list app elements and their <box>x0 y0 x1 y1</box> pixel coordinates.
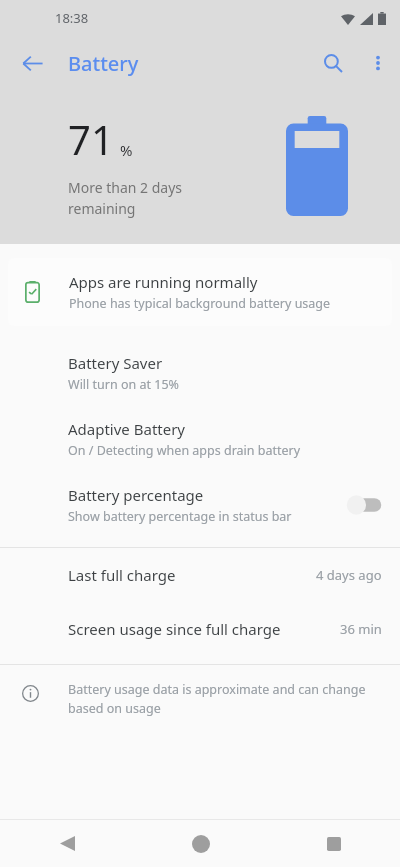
button[interactable]: Battery Saver <box>0 340 400 406</box>
button[interactable]: Last full charge <box>0 548 400 602</box>
button[interactable]: Recent apps <box>267 820 400 867</box>
button[interactable]: Back <box>10 41 54 85</box>
staticText: More than 2 days <box>68 178 183 197</box>
staticText: Battery Saver <box>68 353 163 373</box>
button[interactable]: Apps are running normally <box>8 258 392 326</box>
staticText: 36 min <box>340 620 382 638</box>
staticText: Adaptive Battery <box>68 419 186 439</box>
staticText: 4 days ago <box>316 566 382 584</box>
staticText: On / Detecting when apps drain battery <box>68 442 301 459</box>
staticText: remaining <box>68 199 136 218</box>
staticText: Battery percentage <box>68 485 204 505</box>
button[interactable]: Back <box>0 820 134 867</box>
staticText: 71 <box>68 112 114 166</box>
button[interactable]: Screen usage since full charge <box>0 602 400 656</box>
staticText: based on usage <box>68 700 161 717</box>
staticText: Phone has typical background battery usa… <box>69 295 331 312</box>
staticText: Last full charge <box>68 565 316 585</box>
staticText: Battery usage data is approximate and ca… <box>68 681 366 698</box>
button[interactable]: More options <box>356 41 400 85</box>
button[interactable]: Home <box>134 820 267 867</box>
staticText: % <box>120 140 133 160</box>
button[interactable]: Search <box>310 40 356 86</box>
staticText: Battery <box>68 50 139 77</box>
button[interactable]: Adaptive Battery <box>0 406 400 472</box>
staticText: Show battery percentage in status bar <box>68 508 292 525</box>
button[interactable]: Battery percentage toggle <box>346 494 382 516</box>
staticText: Screen usage since full charge <box>68 619 340 639</box>
button[interactable]: Battery percentage <box>0 472 400 538</box>
staticText: Will turn on at 15% <box>68 376 179 393</box>
staticText: 18:38 <box>55 9 89 27</box>
staticText: Apps are running normally <box>69 272 258 292</box>
